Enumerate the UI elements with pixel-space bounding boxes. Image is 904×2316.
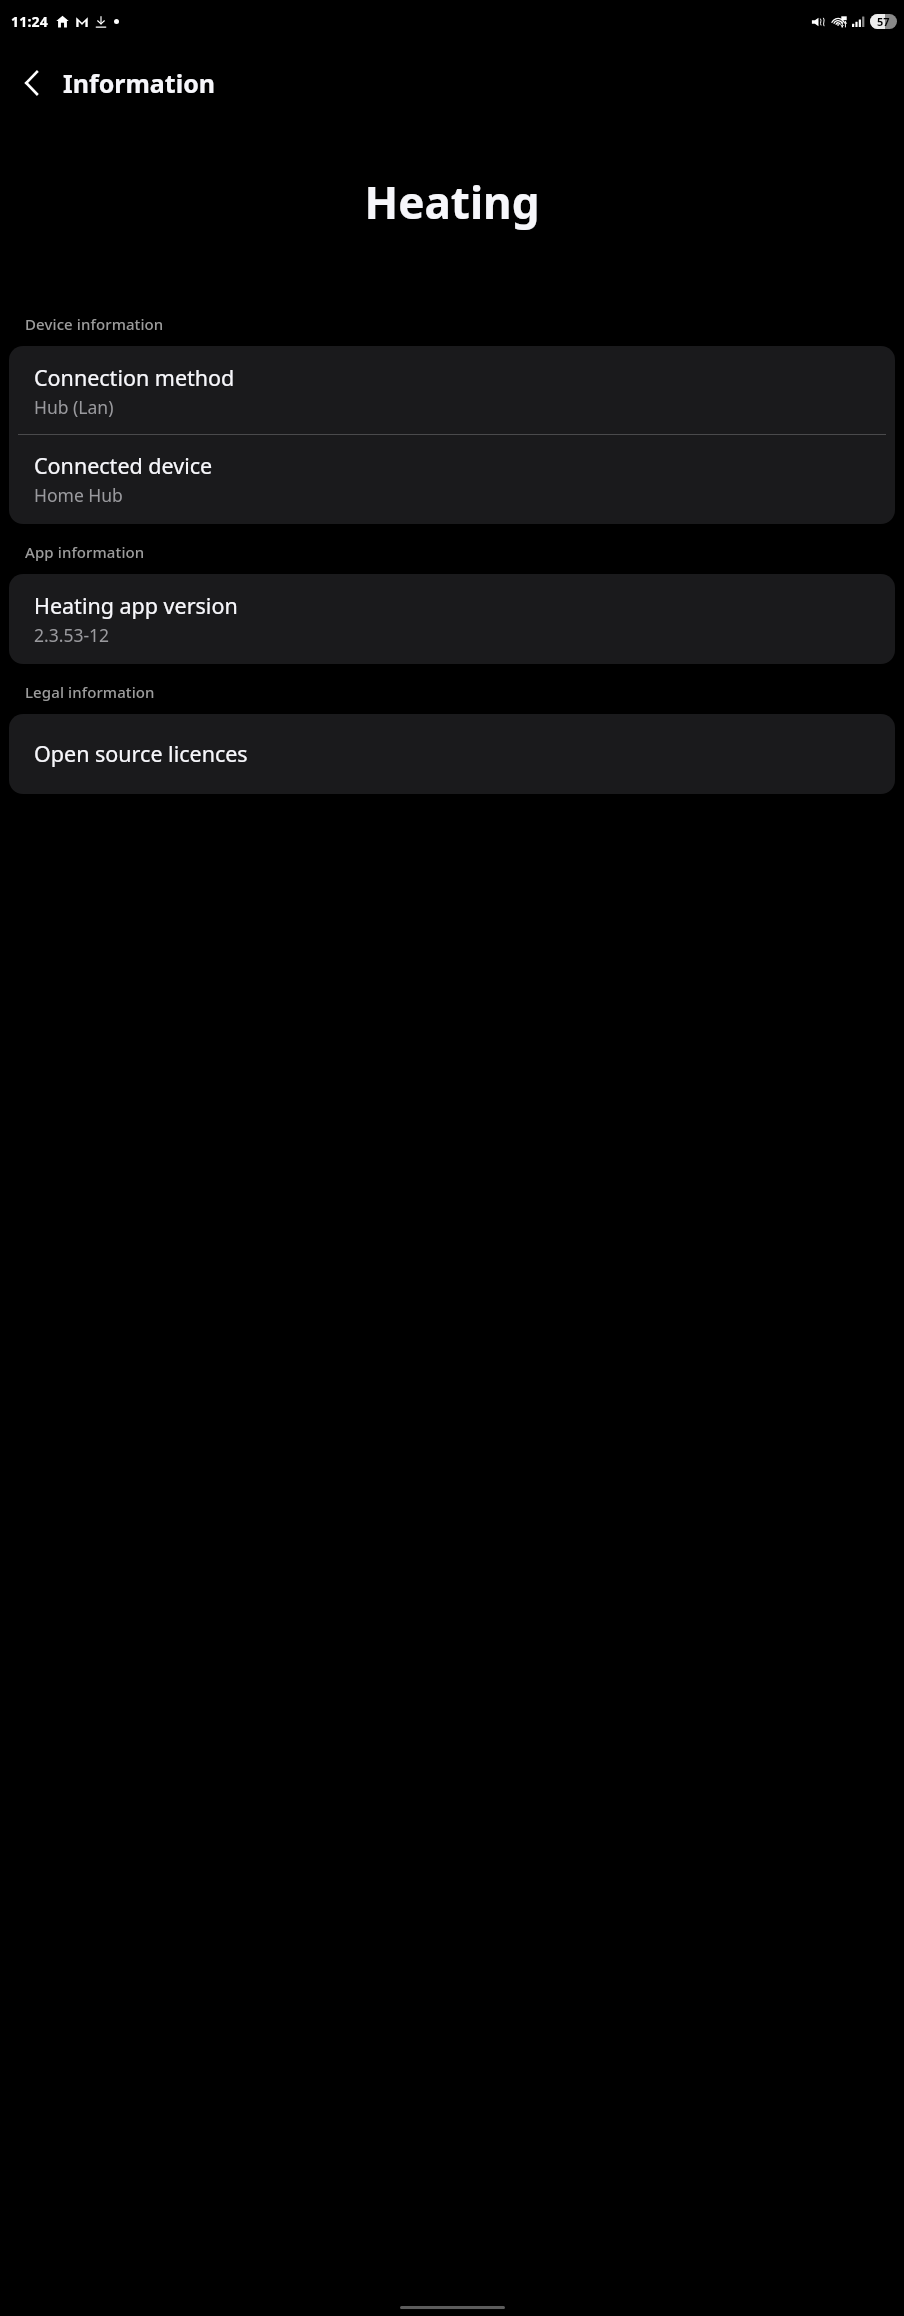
button[interactable]: Connection method [9,346,895,434]
staticText: Heating app version [34,591,238,620]
staticText: Open source licences [34,739,248,768]
staticText: Information [63,66,216,100]
staticText: Connected device [34,451,213,480]
staticText: Connection method [34,363,235,392]
staticText: Legal information [25,682,155,702]
staticText: Hub (Lan) [34,395,114,419]
button[interactable]: Connected device [9,435,895,524]
staticText: 57 [877,14,890,29]
staticText: Heating [0,172,904,232]
staticText: Home Hub [34,483,123,507]
button[interactable]: Back [7,59,55,107]
button[interactable]: Heating app version [9,574,895,664]
button[interactable]: Open source licences [9,714,895,794]
staticText: App information [25,542,145,562]
staticText: Device information [25,314,164,334]
staticText: 11:24 [11,12,48,31]
staticText: 2.3.53-12 [34,623,110,647]
